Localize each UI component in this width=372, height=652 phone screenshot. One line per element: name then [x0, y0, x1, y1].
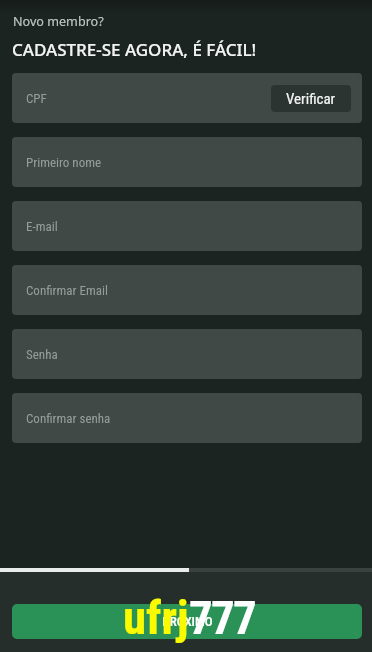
staticText: CADASTRE-SE AGORA, É FÁCIL!: [12, 38, 257, 61]
button[interactable]: E-mail: [12, 201, 362, 251]
button[interactable]: Senha: [12, 329, 362, 379]
button[interactable]: Primeiro nome: [12, 137, 362, 187]
button[interactable]: PRÓXIMO: [12, 604, 362, 639]
staticText: Verificar: [286, 90, 336, 108]
button[interactable]: Confirmar Email: [12, 265, 362, 315]
button[interactable]: CPF: [12, 73, 362, 123]
button[interactable]: Confirmar senha: [12, 393, 362, 443]
staticText: Senha: [26, 347, 58, 362]
staticText: CPF: [26, 91, 47, 106]
button[interactable]: Verificar: [271, 85, 351, 112]
staticText: Primeiro nome: [26, 155, 102, 170]
staticText: Confirmar senha: [26, 411, 111, 426]
staticText: Novo membro?: [13, 13, 104, 30]
staticText: Confirmar Email: [26, 283, 108, 298]
staticText: ufrj: [123, 590, 189, 645]
staticText: E-mail: [26, 219, 58, 234]
staticText: PRÓXIMO: [162, 614, 213, 629]
staticText: 777: [189, 590, 255, 645]
